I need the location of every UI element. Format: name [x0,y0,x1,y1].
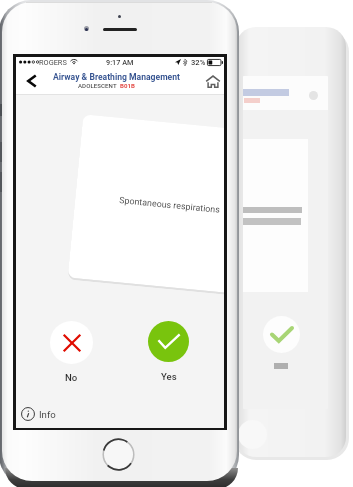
staticText: B01B [120,82,136,89]
staticText: ROGERS [39,58,67,67]
button[interactable]: Back [19,69,43,93]
button[interactable]: Info [21,404,56,424]
button[interactable]: No [50,321,93,383]
staticText: No [65,372,78,383]
staticText: ADOLESCENT [78,82,117,89]
button[interactable]: Yes [148,321,189,382]
button[interactable]: Spontaneous respirations [68,114,224,296]
staticText: Yes [161,371,177,382]
button[interactable]: Home [202,70,224,92]
staticText: 32% [191,58,206,67]
staticText: 9:17 AM [106,58,134,67]
staticText: Info [39,409,56,420]
staticText: Spontaneous respirations [119,195,221,215]
staticText: Airway & Breathing Management [53,72,180,82]
